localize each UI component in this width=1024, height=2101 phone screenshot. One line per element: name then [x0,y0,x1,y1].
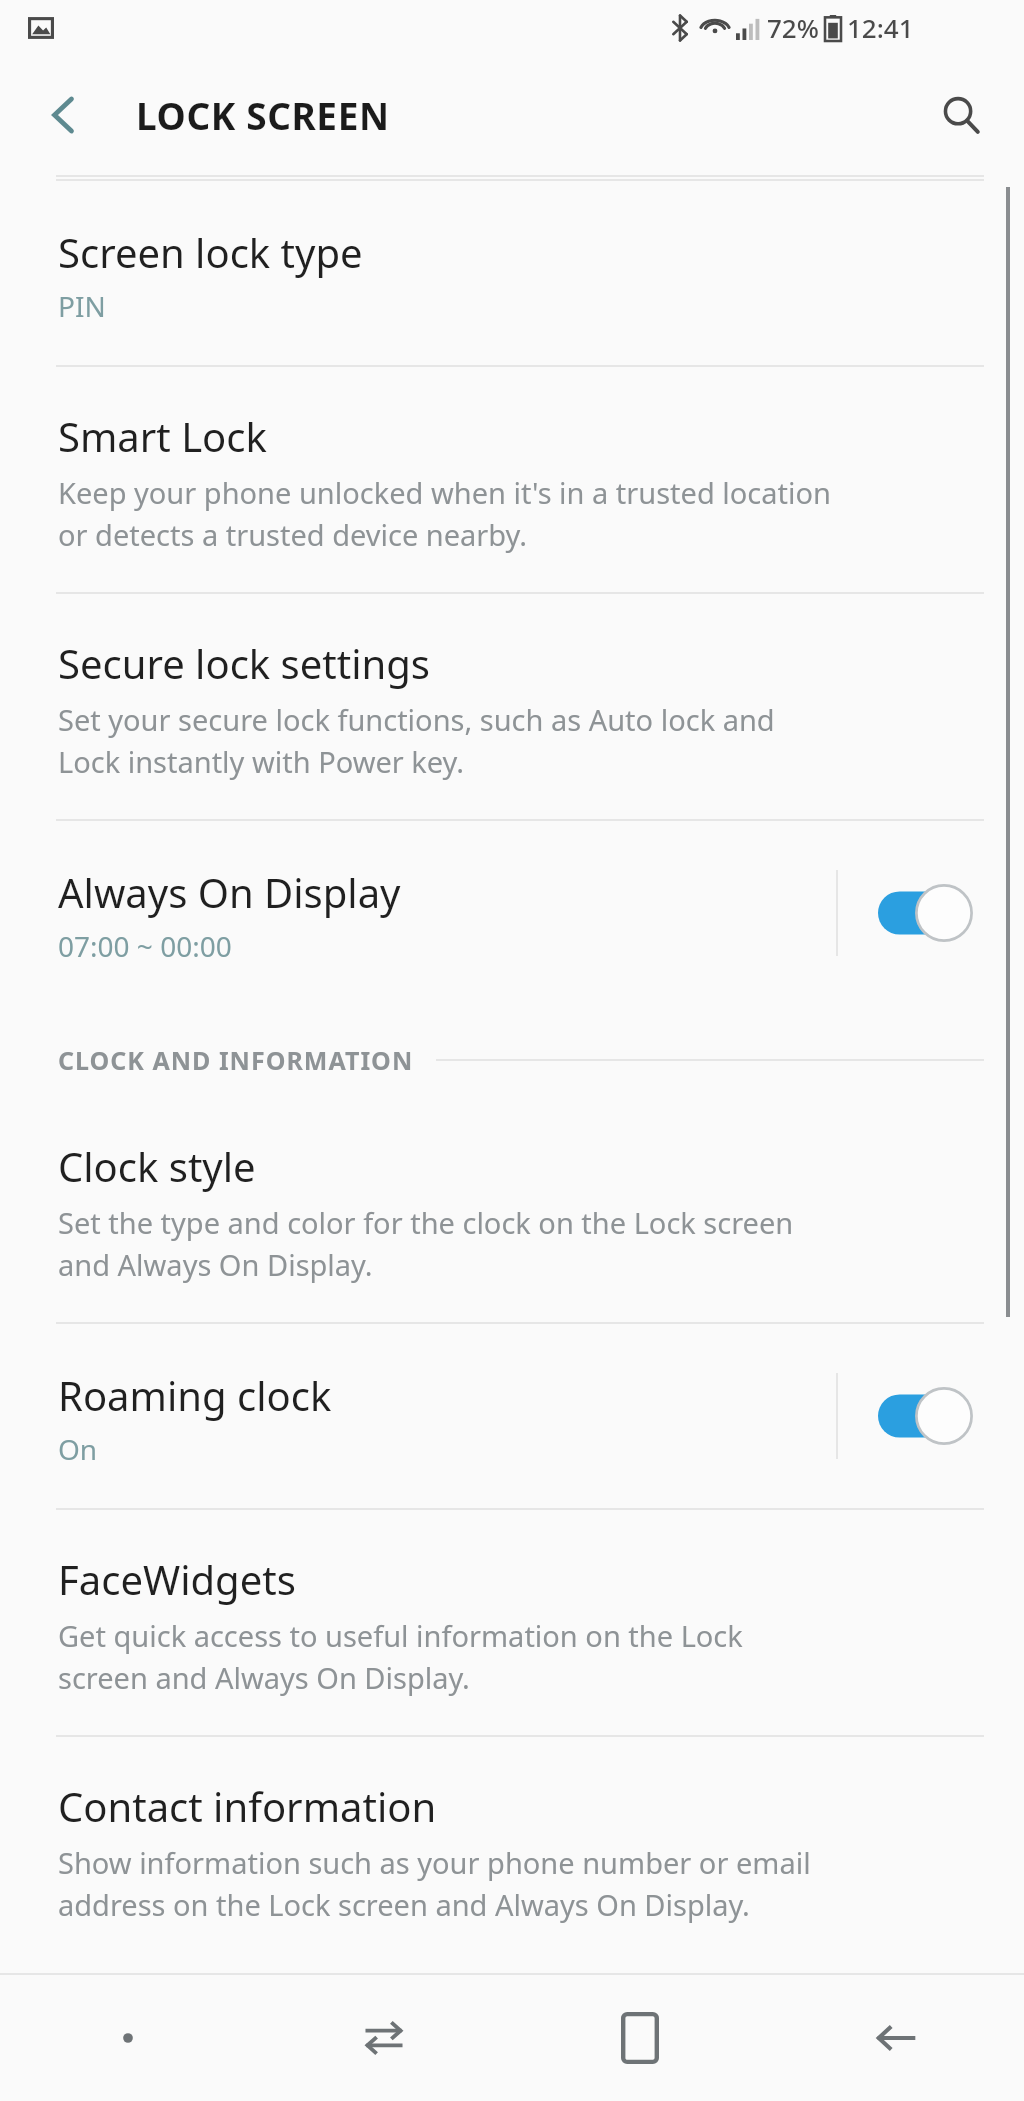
staticText: PIN [58,287,106,325]
staticText: 07:00 ~ 00:00 [58,927,232,965]
staticText: Get quick access to useful information o… [58,1616,743,1697]
button[interactable]: Navigate up [24,75,104,155]
button[interactable]: Clock style [0,1115,1024,1322]
staticText: FaceWidgets [58,1552,296,1606]
staticText: 12:41 [847,10,914,45]
button[interactable]: Smart Lock [0,367,1024,592]
staticText: LOCK SCREEN [136,90,390,140]
staticText: CLOCK AND INFORMATION [58,1043,414,1077]
button[interactable]: Back [768,1975,1024,2101]
staticText: On [58,1430,98,1468]
button[interactable]: More options [0,1975,256,2101]
button[interactable]: Home [512,1975,768,2101]
staticText: Smart Lock [58,409,267,463]
button[interactable]: Always On Display toggle, on [872,870,980,956]
button[interactable]: Always On Display [0,821,1024,1005]
button[interactable]: Roaming clock [0,1324,1024,1508]
staticText: Clock style [58,1139,256,1193]
staticText: Secure lock settings [58,636,430,690]
staticText: Keep your phone unlocked when it's in a … [58,473,831,554]
staticText: Roaming clock [58,1368,332,1422]
button[interactable]: Search [918,72,1004,158]
button[interactable]: Roaming clock toggle, on [872,1373,980,1459]
button[interactable]: Screen lock type [0,181,1024,365]
staticText: Show information such as your phone numb… [58,1843,811,1924]
staticText: Always On Display [58,865,401,919]
button[interactable]: Secure lock settings [0,594,1024,819]
button[interactable]: FaceWidgets [0,1510,1024,1735]
button[interactable]: Contact information [0,1737,1024,1954]
staticText: Screen lock type [58,225,363,279]
staticText: 72% [767,10,819,45]
button[interactable]: Recents [256,1975,512,2101]
staticText: Set the type and color for the clock on … [58,1203,794,1284]
staticText: Contact information [58,1779,437,1833]
staticText: Set your secure lock functions, such as … [58,700,775,781]
